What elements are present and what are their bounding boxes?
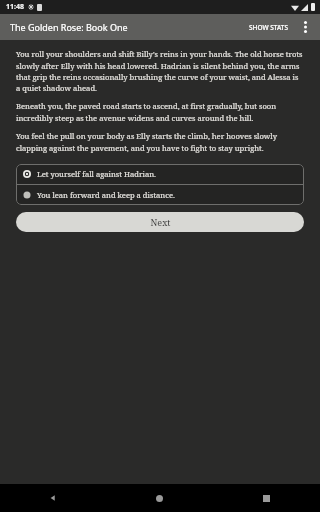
staticText: Let yourself fall against Hadrian.	[37, 169, 156, 179]
button[interactable]: Home	[106, 484, 213, 512]
staticText: You lean forward and keep a distance.	[37, 190, 175, 200]
staticText: SHOW STATS	[249, 23, 289, 32]
button[interactable]: Let yourself fall against Hadrian.	[16, 164, 304, 184]
staticText: Next	[150, 216, 171, 228]
staticText: Beneath you, the paved road starts to as…	[16, 101, 304, 123]
staticText: You roll your shoulders and shift Billy'…	[16, 49, 304, 93]
button[interactable]: Back	[0, 484, 106, 512]
button[interactable]: Recent apps	[213, 484, 320, 512]
staticText: The Golden Rose: Book One	[10, 21, 128, 33]
button[interactable]: You lean forward and keep a distance.	[16, 185, 304, 205]
button[interactable]: SHOW STATS	[244, 19, 294, 36]
button[interactable]: Next	[16, 212, 304, 232]
staticText: You feel the pull on your body as Elly s…	[16, 131, 304, 153]
staticText: 11:48	[6, 2, 24, 12]
button[interactable]: More options	[294, 16, 316, 38]
